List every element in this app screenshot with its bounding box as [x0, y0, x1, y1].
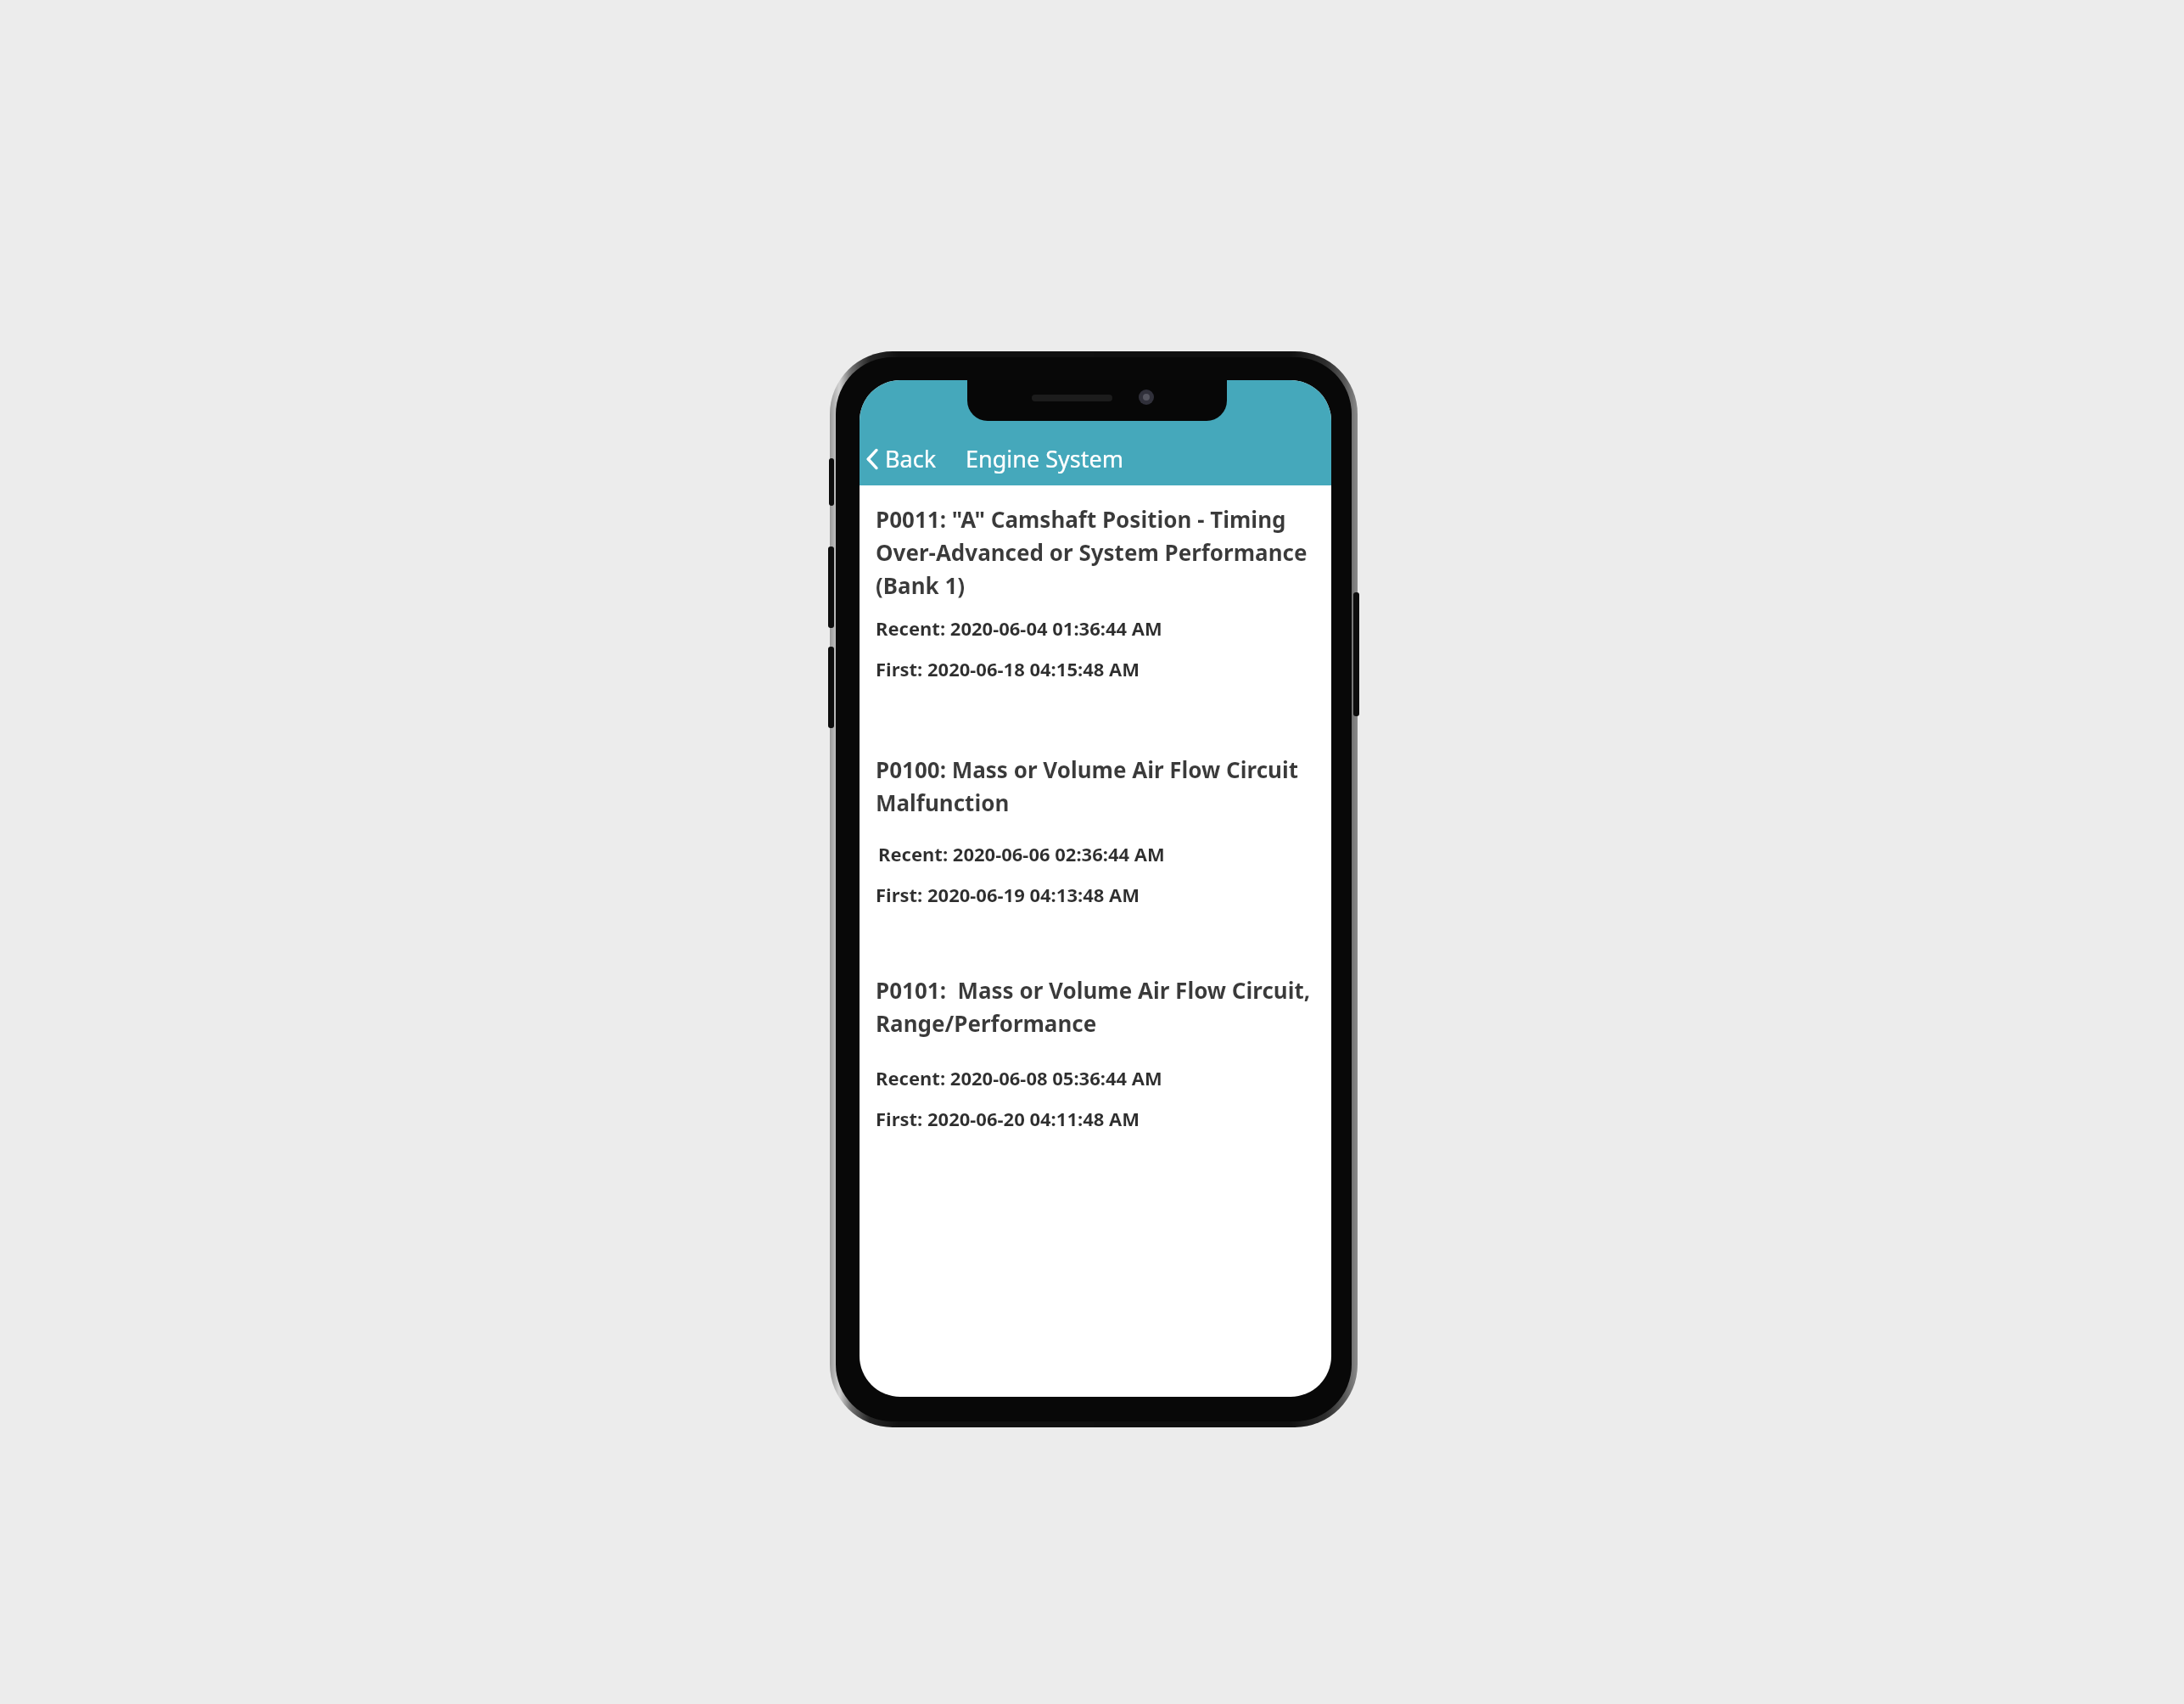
staticText: Engine System [966, 443, 1123, 474]
staticText: P0011: "A" Camshaft Position - Timing Ov… [876, 504, 1321, 600]
staticText: P0100: Mass or Volume Air Flow Circuit M… [876, 754, 1321, 817]
other: Ring silent switch [829, 458, 834, 506]
staticText: P0101: Mass or Volume Air Flow Circuit, … [876, 975, 1321, 1038]
staticText: Back [885, 443, 937, 474]
staticText: Recent: 2020-06-08 05:36:44 AM [876, 1065, 1162, 1090]
staticText: First: 2020-06-20 04:11:48 AM [876, 1106, 1140, 1131]
staticText: First: 2020-06-18 04:15:48 AM [876, 656, 1140, 681]
button[interactable]: P0101: Mass or Volume Air Flow Circuit, … [876, 975, 1321, 1131]
other: Volume down [828, 647, 834, 728]
staticText: First: 2020-06-19 04:13:48 AM [876, 882, 1140, 907]
other: Power [1353, 592, 1359, 716]
button[interactable]: Back [860, 438, 944, 479]
staticText: Recent: 2020-06-06 02:36:44 AM [878, 841, 1165, 866]
button[interactable]: P0100: Mass or Volume Air Flow Circuit M… [876, 754, 1321, 907]
staticText: Recent: 2020-06-04 01:36:44 AM [876, 615, 1162, 641]
button[interactable]: P0011: "A" Camshaft Position - Timing Ov… [876, 504, 1321, 681]
other: Volume up [828, 547, 834, 628]
